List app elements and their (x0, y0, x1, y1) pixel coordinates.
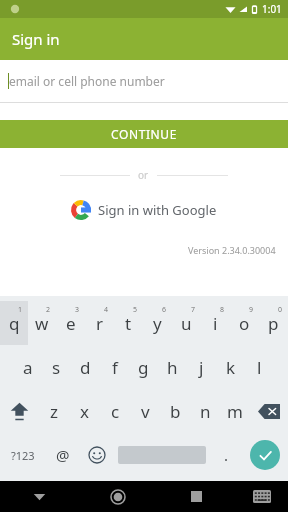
button[interactable]: b (160, 389, 190, 433)
staticText: w (35, 312, 49, 335)
staticText: 4 (104, 305, 109, 315)
button[interactable]: a (14, 345, 42, 389)
staticText: 2 (46, 305, 51, 315)
staticText: c (111, 400, 120, 423)
button[interactable]: ?123 (0, 433, 46, 477)
staticText: 9 (249, 305, 254, 315)
button[interactable]: o (230, 301, 259, 345)
staticText: 1 (18, 305, 23, 315)
button[interactable]: p (259, 301, 288, 345)
button[interactable]: Recent apps (157, 481, 236, 512)
button[interactable]: n (190, 389, 220, 433)
button[interactable]: Switch keyboard (236, 481, 288, 512)
staticText: m (227, 400, 243, 423)
button[interactable]: v (130, 389, 160, 433)
staticText: CONTINUE (111, 126, 177, 142)
button[interactable]: Sign in with Google (71, 200, 217, 220)
button[interactable]: e (56, 301, 85, 345)
button[interactable]: w (28, 301, 56, 345)
button[interactable]: q (0, 301, 28, 345)
staticText: ?123 (11, 448, 35, 463)
button[interactable]: l (245, 345, 274, 389)
staticText: x (80, 400, 89, 423)
staticText: y (153, 312, 162, 335)
staticText: k (226, 356, 236, 379)
staticText: g (138, 356, 149, 379)
button[interactable]: i (201, 301, 230, 345)
staticText: 1:01 (262, 2, 282, 16)
staticText: r (96, 312, 104, 335)
button[interactable]: z (38, 389, 69, 433)
staticText: b (170, 400, 181, 423)
staticText: 5 (133, 305, 138, 315)
staticText: p (268, 312, 279, 335)
staticText: u (181, 312, 192, 335)
staticText: 7 (191, 305, 196, 315)
staticText: h (167, 356, 178, 379)
staticText: Sign in with Google (98, 201, 217, 219)
button[interactable]: Emoji (80, 433, 114, 477)
button[interactable]: x (69, 389, 100, 433)
button[interactable]: f (100, 345, 129, 389)
button[interactable]: s (42, 345, 71, 389)
staticText: or (138, 168, 149, 182)
button[interactable]: u (172, 301, 201, 345)
staticText: l (257, 356, 262, 379)
staticText: f (112, 356, 118, 379)
button[interactable]: Home (78, 481, 157, 512)
staticText: Sign in (12, 29, 60, 49)
staticText: q (9, 312, 20, 335)
staticText: 6 (162, 305, 167, 315)
staticText: a (23, 356, 33, 379)
staticText: d (80, 356, 91, 379)
button[interactable]: j (187, 345, 216, 389)
staticText: v (141, 400, 150, 423)
button[interactable]: Shift (0, 389, 38, 433)
button[interactable]: CONTINUE (0, 120, 288, 148)
button[interactable]: r (85, 301, 114, 345)
staticText: s (52, 356, 61, 379)
staticText: n (200, 400, 211, 423)
button[interactable]: m (220, 389, 250, 433)
staticText: Version 2.34.0.30004 (188, 244, 276, 256)
button[interactable]: g (129, 345, 158, 389)
staticText: j (199, 356, 204, 379)
staticText: e (66, 312, 76, 335)
staticText: email or cell phone number (9, 73, 165, 89)
button[interactable]: y (143, 301, 172, 345)
staticText: i (213, 312, 218, 335)
button[interactable]: h (158, 345, 187, 389)
button[interactable]: k (216, 345, 245, 389)
staticText: @ (56, 445, 70, 465)
button[interactable]: Backspace (250, 389, 288, 433)
staticText: 3 (75, 305, 80, 315)
button[interactable]: c (100, 389, 130, 433)
staticText: 0 (278, 305, 283, 315)
button[interactable]: t (114, 301, 143, 345)
button[interactable]: d (71, 345, 100, 389)
staticText: 8 (220, 305, 225, 315)
button[interactable]: . (210, 433, 242, 477)
button[interactable]: Done (250, 440, 280, 470)
button[interactable]: Back (0, 481, 78, 512)
button[interactable]: @ (46, 433, 80, 477)
staticText: . (224, 445, 229, 465)
staticText: t (125, 312, 132, 335)
staticText: o (239, 312, 250, 335)
staticText: z (50, 400, 58, 423)
